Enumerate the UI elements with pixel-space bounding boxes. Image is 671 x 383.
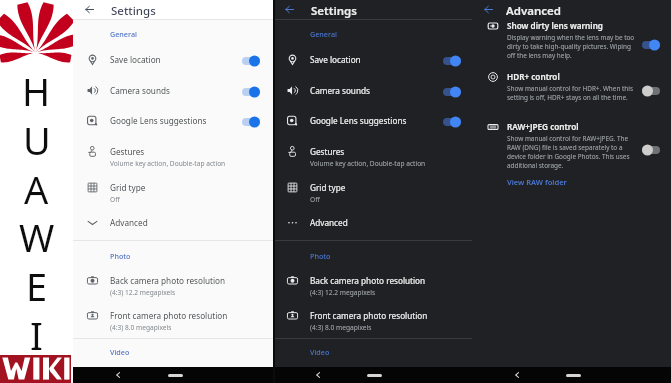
staticText: Google Lens suggestions (310, 115, 407, 126)
button[interactable]: Home (168, 374, 183, 377)
staticText: I (30, 309, 43, 353)
staticText: Off (310, 195, 320, 204)
button[interactable]: Front camera photo resolution (273, 302, 472, 330)
button[interactable]: Back camera photo resolution (73, 267, 273, 295)
button[interactable]: Video (310, 346, 330, 358)
button[interactable]: HDR+ control (472, 71, 671, 102)
staticText: (4:3) 12.2 megapixels (110, 288, 176, 297)
staticText: Back camera photo resolution (310, 275, 426, 286)
button[interactable]: Home (566, 374, 581, 377)
staticText: (4:3) 8.0 megapixels (310, 323, 372, 332)
button[interactable]: Toggle (242, 84, 262, 100)
button[interactable]: Back (481, 2, 495, 16)
staticText: Volume key action, Double-tap action (310, 159, 426, 168)
button[interactable]: Grid type (273, 174, 472, 202)
button[interactable]: Back (282, 2, 296, 16)
staticText: Show manual control for RAW+JPEG. The RA… (507, 134, 635, 170)
button[interactable]: Google Lens suggestions (73, 107, 273, 135)
button[interactable]: Home (367, 374, 382, 377)
staticText: Show manual control for HDR+. When this … (507, 84, 635, 102)
button[interactable]: Gestures (73, 138, 273, 166)
staticText: RAW+JPEG control (507, 121, 579, 132)
button[interactable]: Toggle (443, 53, 463, 69)
button[interactable]: Back camera photo resolution (273, 267, 472, 295)
button[interactable]: Back (312, 369, 324, 381)
staticText: Front camera photo resolution (110, 310, 228, 321)
button[interactable]: View RAW folder (507, 177, 567, 187)
staticText: Save location (310, 54, 361, 65)
button[interactable]: Huawei Wiki (0, 355, 71, 383)
staticText: Settings (311, 3, 357, 19)
staticText: Front camera photo resolution (310, 310, 428, 321)
button[interactable]: Save location (273, 46, 472, 74)
button[interactable]: Camera sounds (73, 77, 273, 105)
staticText: Photo (110, 251, 131, 261)
staticText: Advanced (506, 3, 561, 19)
staticText: Gestures (310, 146, 345, 157)
staticText: Advanced (110, 217, 148, 228)
staticText: Settings (111, 3, 156, 19)
button[interactable]: Toggle (642, 142, 662, 158)
button[interactable]: Front camera photo resolution (73, 302, 273, 330)
staticText: (4:3) 8.0 megapixels (110, 323, 172, 332)
button[interactable]: Toggle (642, 83, 662, 99)
staticText: Grid type (110, 182, 146, 193)
staticText: U (23, 114, 51, 158)
staticText: Gestures (110, 146, 145, 157)
button[interactable]: General (310, 28, 337, 40)
staticText: Advanced (310, 217, 348, 228)
staticText: HDR+ control (507, 71, 560, 82)
button[interactable]: Google Lens suggestions (273, 107, 472, 135)
button[interactable]: Grid type (73, 174, 273, 202)
staticText: Video (110, 347, 130, 357)
button[interactable]: Camera sounds (273, 77, 472, 105)
staticText: Photo (310, 251, 331, 261)
button[interactable]: Back (112, 369, 124, 381)
staticText: E (26, 260, 48, 304)
button[interactable]: Toggle (443, 114, 463, 130)
button[interactable]: Back (511, 369, 523, 381)
button[interactable]: Advanced (273, 209, 472, 237)
staticText: Save location (110, 54, 161, 65)
button[interactable]: Advanced (73, 209, 273, 237)
staticText: (4:3) 12.2 megapixels (310, 288, 376, 297)
staticText: General (310, 29, 337, 39)
button[interactable]: Toggle (242, 114, 262, 130)
button[interactable]: Photo (110, 250, 131, 262)
button[interactable]: Toggle (242, 53, 262, 69)
staticText: Display warning when the lens may be too… (507, 33, 635, 60)
button[interactable]: Video (110, 346, 130, 358)
button[interactable]: Gestures (273, 138, 472, 166)
button[interactable]: RAW+JPEG control (472, 121, 671, 187)
button[interactable]: Save location (73, 46, 273, 74)
staticText: Camera sounds (310, 85, 370, 96)
staticText: A (24, 163, 49, 207)
staticText: Back camera photo resolution (110, 275, 226, 286)
staticText: Show dirty lens warning (507, 20, 603, 31)
staticText: Video (310, 347, 330, 357)
staticText: Off (110, 195, 120, 204)
staticText: Google Lens suggestions (110, 115, 207, 126)
staticText: Camera sounds (110, 85, 170, 96)
button[interactable]: Photo (310, 250, 331, 262)
button[interactable]: General (110, 28, 137, 40)
button[interactable]: Show dirty lens warning (472, 20, 671, 60)
staticText: Volume key action, Double-tap action (110, 159, 226, 168)
staticText: H (22, 65, 51, 109)
staticText: W (19, 211, 55, 255)
button[interactable]: Toggle (642, 37, 662, 53)
button[interactable]: Toggle (443, 84, 463, 100)
button[interactable]: Back (82, 2, 96, 16)
staticText: Grid type (310, 182, 346, 193)
staticText: General (110, 29, 137, 39)
